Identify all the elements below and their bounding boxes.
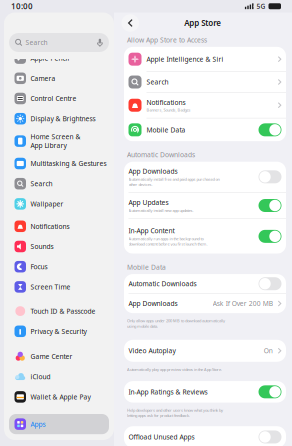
staticText: Notifications	[146, 98, 185, 107]
staticText: Automatically play app preview videos in…	[127, 367, 222, 372]
staticText: Control Centre	[30, 94, 76, 103]
staticText: Automatically install free and paid apps…	[128, 176, 219, 187]
button[interactable]: Display & Brightness	[9, 109, 109, 129]
staticText: Apple Intelligence & Siri	[146, 55, 223, 64]
button[interactable]: Mobile Data	[258, 123, 281, 136]
staticText: Apps	[30, 420, 45, 429]
staticText: Search	[26, 38, 48, 47]
staticText: Search	[30, 179, 52, 188]
button[interactable]: Camera	[9, 68, 109, 88]
staticText: Automatic Downloads	[128, 279, 196, 288]
staticText: Automatically run apps in the background…	[128, 236, 207, 247]
staticText: Mobile Data	[127, 263, 166, 272]
button[interactable]: Touch ID & Passcode	[9, 301, 109, 321]
button[interactable]: Focus	[9, 257, 109, 277]
button[interactable]: Wallpaper	[9, 194, 109, 214]
button[interactable]: Apple Intelligence & Siri	[124, 47, 286, 71]
staticText: Screen Time	[30, 282, 70, 291]
button[interactable]: Apps	[9, 414, 109, 434]
button[interactable]: Wallet & Apple Pay	[9, 387, 109, 407]
button[interactable]: Offload Unused Apps	[258, 430, 281, 443]
staticText: Notifications	[30, 222, 69, 231]
staticText: Focus	[30, 262, 47, 271]
staticText: Mobile Data	[146, 125, 185, 134]
staticText: Apple Pencil	[30, 54, 69, 63]
button[interactable]: Search	[9, 33, 109, 52]
button[interactable]: In-App Ratings & Reviews	[258, 385, 281, 398]
staticText: App Store	[184, 18, 221, 28]
button[interactable]: Game Center	[9, 346, 109, 367]
staticText: App Downloads	[128, 167, 177, 175]
staticText: Game Center	[30, 352, 72, 361]
button[interactable]: Search	[9, 174, 109, 194]
staticText: 10:00	[11, 1, 33, 11]
staticText: Wallpaper	[30, 199, 63, 208]
button[interactable]: Automatic Downloads	[258, 277, 281, 290]
staticText: In-App Content	[128, 226, 174, 235]
staticText: Home Screen & App Library	[30, 132, 80, 150]
staticText: Automatically install new app updates.	[128, 208, 193, 213]
button[interactable]: App Downloads	[124, 294, 286, 313]
button[interactable]: In-App Content	[258, 230, 281, 243]
staticText: Privacy & Security	[30, 327, 86, 336]
staticText: Wallet & Apple Pay	[30, 392, 90, 401]
staticText: iCloud	[30, 372, 50, 381]
button[interactable]: Screen Time	[9, 277, 109, 297]
button[interactable]: Video Autoplay	[124, 340, 286, 362]
staticText: In-App Ratings & Reviews	[128, 387, 207, 396]
staticText: Multitasking & Gestures	[30, 159, 106, 168]
button[interactable]: iCloud	[9, 367, 109, 387]
staticText: On	[264, 346, 273, 355]
button[interactable]: Back	[121, 14, 139, 32]
staticText: Offload Unused Apps	[128, 432, 194, 441]
staticText: Touch ID & Passcode	[30, 307, 95, 316]
button[interactable]: Sounds	[9, 236, 109, 257]
button[interactable]: App Updates	[258, 199, 281, 212]
button[interactable]: Control Centre	[9, 88, 109, 109]
staticText: Video Autoplay	[128, 346, 175, 355]
button[interactable]: App Downloads	[258, 170, 281, 183]
staticText: Display & Brightness	[30, 114, 95, 123]
staticText: Search	[146, 78, 168, 86]
staticText: Help developers and other users know wha…	[127, 408, 223, 418]
button[interactable]: Notifications	[124, 93, 286, 118]
staticText: Ask If Over 200 MB	[213, 299, 273, 308]
staticText: App Downloads	[128, 299, 177, 308]
staticText: Automatic Downloads	[127, 150, 195, 159]
staticText: Only allow apps under 200 MB to download…	[127, 318, 225, 329]
button[interactable]: Apple Pencil	[9, 48, 109, 68]
staticText: Sounds	[30, 242, 53, 251]
button[interactable]: Notifications	[9, 216, 109, 236]
staticText: App Updates	[128, 198, 168, 207]
button[interactable]: Search	[124, 72, 286, 92]
staticText: Allow App Store to Access	[127, 35, 207, 44]
staticText: 5G	[256, 2, 265, 11]
button[interactable]: Privacy & Security	[9, 321, 109, 341]
button[interactable]: Home Screen & App Library	[9, 129, 109, 153]
button[interactable]: Multitasking & Gestures	[9, 153, 109, 174]
staticText: Camera	[30, 74, 55, 83]
staticText: Banners, Sounds, Badges	[146, 107, 190, 112]
